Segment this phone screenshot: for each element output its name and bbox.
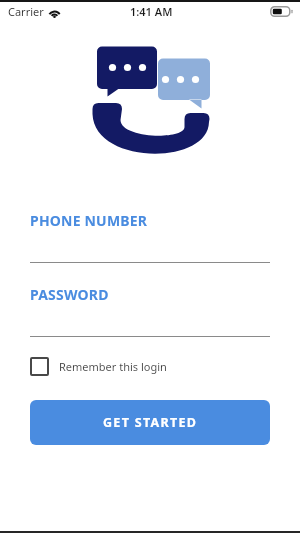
staticText: Carrier	[8, 4, 44, 19]
staticText: Remember this login	[59, 359, 167, 374]
staticText: 1:41 AM	[130, 4, 173, 19]
button[interactable]: GET STARTED	[30, 400, 270, 445]
staticText: PASSWORD	[30, 285, 109, 304]
staticText: GET STARTED	[103, 414, 198, 431]
button[interactable]: Remember this login	[30, 357, 270, 376]
staticText: PHONE NUMBER	[30, 211, 148, 230]
